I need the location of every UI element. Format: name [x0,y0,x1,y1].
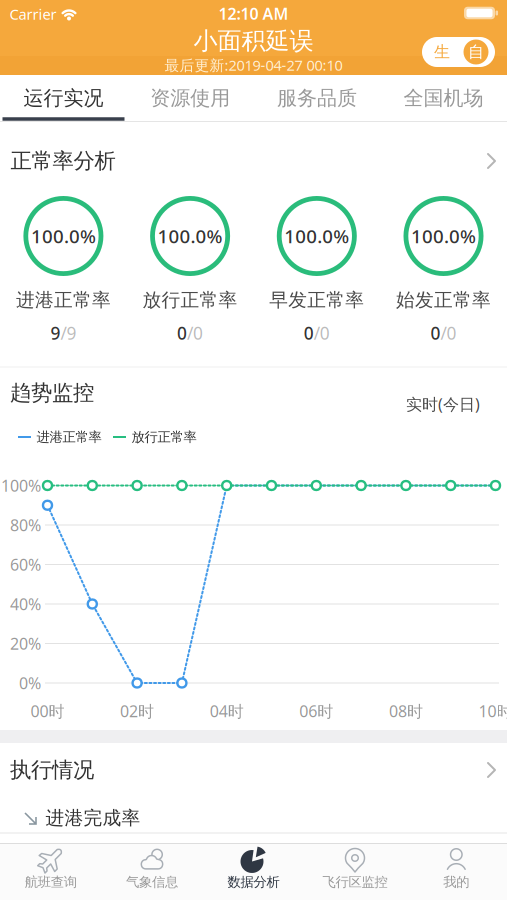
staticText: 10时 [478,700,507,722]
button[interactable]: 气象信息 [102,843,203,900]
staticText: 始发正常率 [396,288,491,311]
staticText: 进港正常率 [36,429,101,445]
button[interactable]: 运行实况 [0,75,126,121]
button[interactable]: 数据分析 [203,843,304,900]
staticText: 100.0% [31,224,96,248]
staticText: Carrier [9,4,56,24]
staticText: 06时 [299,700,333,722]
staticText: 进港正常率 [16,288,111,311]
staticText: 放行正常率 [143,288,238,311]
staticText: 02时 [120,700,154,722]
staticText: 资源使用 [150,86,230,110]
button[interactable]: 航班查询 [0,843,101,900]
staticText: 40% [10,593,41,615]
staticText: 趋势监控 [10,380,94,406]
staticText: 我的 [443,874,469,890]
staticText: /0 [440,321,456,344]
staticText: 执行情况 [10,757,94,783]
staticText: 早发正常率 [269,288,364,311]
staticText: /9 [60,321,76,344]
staticText: 100% [1,475,41,496]
staticText: 100.0% [284,224,349,248]
button[interactable]: 全国机场 [381,75,507,121]
button[interactable]: 我的 [406,843,507,900]
button[interactable]: 进港完成率 [0,798,507,839]
staticText: 9 [50,321,60,344]
button[interactable]: 执行情况 [0,748,507,792]
staticText: /0 [314,321,330,344]
staticText: 自 [468,42,484,62]
staticText: 运行实况 [23,86,103,110]
staticText: 100.0% [411,224,476,248]
staticText: 正常率分析 [10,148,115,174]
staticText: /0 [187,321,203,344]
staticText: 最后更新:2019-04-27 00:10 [164,55,342,75]
button[interactable]: 正常率分析 [0,139,507,183]
staticText: 04时 [210,700,244,722]
staticText: 0% [19,672,41,694]
staticText: 飞行区监控 [322,874,387,890]
staticText: 60% [10,554,41,575]
staticText: 数据分析 [227,874,279,890]
button[interactable]: 资源使用 [127,75,253,121]
button[interactable]: 生/自 切换 [422,37,495,67]
staticText: 航班查询 [25,874,77,890]
staticText: 放行正常率 [131,429,196,445]
staticText: 0 [177,321,187,344]
staticText: 进港完成率 [45,806,140,829]
staticText: 0 [304,321,314,344]
staticText: 08时 [389,700,423,722]
staticText: 0 [430,321,440,344]
staticText: 小面积延误 [193,26,313,56]
button[interactable]: 飞行区监控 [304,843,405,900]
staticText: 实时(今日) [406,393,480,415]
staticText: 气象信息 [126,874,178,890]
staticText: 00时 [30,700,64,722]
staticText: 全国机场 [404,86,484,110]
staticText: 20% [10,633,41,654]
staticText: 100.0% [158,224,223,248]
staticText: 服务品质 [277,86,357,110]
staticText: 12:10 AM [218,3,288,24]
staticText: 80% [10,514,41,536]
staticText: 生 [434,42,450,62]
button[interactable]: 服务品质 [254,75,380,121]
